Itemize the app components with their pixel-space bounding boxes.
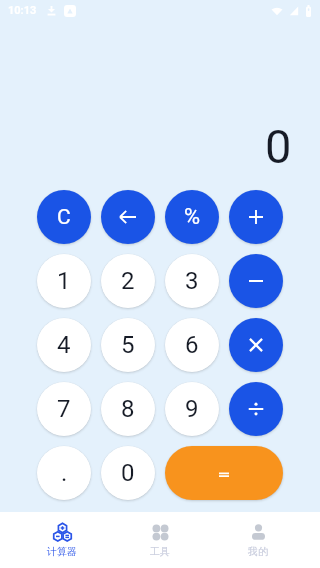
- button[interactable]: C: [37, 190, 91, 244]
- button[interactable]: 0: [101, 446, 155, 500]
- staticText: 5: [121, 331, 135, 359]
- button[interactable]: [229, 254, 283, 308]
- button[interactable]: 4: [37, 318, 91, 372]
- staticText: 10:13: [8, 4, 37, 17]
- staticText: 8: [121, 395, 135, 423]
- button[interactable]: %: [165, 190, 219, 244]
- button[interactable]: 我的: [209, 512, 307, 568]
- staticText: 0: [265, 119, 292, 174]
- staticText: 我的: [248, 545, 268, 558]
- button[interactable]: 工具: [111, 512, 209, 568]
- button[interactable]: 9: [165, 382, 219, 436]
- button[interactable]: 计算器: [13, 512, 111, 568]
- staticText: 0: [121, 459, 135, 487]
- staticText: 3: [185, 267, 199, 295]
- staticText: 4: [57, 331, 71, 359]
- button[interactable]: 2: [101, 254, 155, 308]
- staticText: 工具: [150, 545, 170, 558]
- button[interactable]: [229, 190, 283, 244]
- staticText: 2: [121, 267, 135, 295]
- button[interactable]: 7: [37, 382, 91, 436]
- staticText: 7: [57, 395, 71, 423]
- button[interactable]: [101, 190, 155, 244]
- button[interactable]: .: [37, 446, 91, 500]
- button[interactable]: 8: [101, 382, 155, 436]
- button[interactable]: 6: [165, 318, 219, 372]
- staticText: 计算器: [47, 545, 77, 558]
- button[interactable]: 5: [101, 318, 155, 372]
- staticText: 1: [57, 267, 71, 295]
- button[interactable]: [229, 318, 283, 372]
- staticText: C: [57, 205, 71, 230]
- button[interactable]: 3: [165, 254, 219, 308]
- button[interactable]: 1: [37, 254, 91, 308]
- button[interactable]: [229, 382, 283, 436]
- button[interactable]: [165, 446, 283, 500]
- staticText: %: [184, 204, 201, 230]
- staticText: 9: [185, 395, 199, 423]
- staticText: 6: [185, 331, 199, 359]
- staticText: .: [61, 459, 68, 487]
